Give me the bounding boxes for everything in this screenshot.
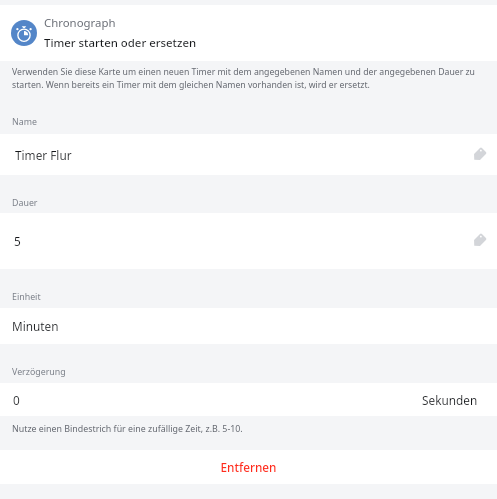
- staticText: Chronograph: [44, 15, 116, 31]
- staticText: Einheit: [12, 291, 41, 303]
- other: Chronograph app icon: [11, 20, 37, 46]
- staticText: Dauer: [12, 197, 38, 209]
- button[interactable]: Chronograph app icon: [0, 5, 497, 61]
- staticText: Verzögerung: [12, 366, 66, 378]
- button[interactable]: 5: [0, 213, 497, 269]
- staticText: Entfernen: [220, 459, 277, 475]
- staticText: Minuten: [12, 318, 59, 334]
- button[interactable]: Timer Flur: [0, 134, 497, 175]
- button[interactable]: Entfernen: [0, 450, 497, 484]
- staticText: Timer starten oder ersetzen: [44, 35, 197, 51]
- staticText: 0: [13, 392, 20, 408]
- staticText: Sekunden: [422, 392, 478, 408]
- button[interactable]: Insert variable: [467, 143, 491, 167]
- staticText: Verwenden Sie diese Karte um einen neuen…: [12, 66, 487, 91]
- button[interactable]: Minuten: [0, 308, 497, 344]
- staticText: Name: [12, 116, 37, 128]
- staticText: 5: [14, 233, 21, 249]
- staticText: Timer Flur: [15, 147, 72, 163]
- staticText: Nutze einen Bindestrich für eine zufälli…: [12, 423, 243, 435]
- button[interactable]: 0: [0, 383, 497, 416]
- button[interactable]: Insert variable: [467, 229, 491, 253]
